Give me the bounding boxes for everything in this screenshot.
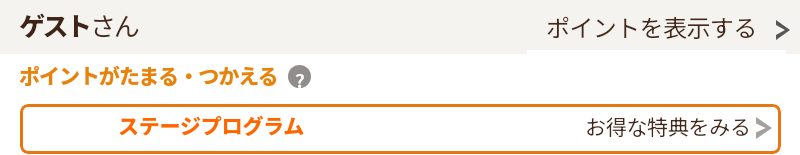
button[interactable]: ポイントがたまる・つかえる [19, 60, 278, 90]
staticText: お得な特典をみる [585, 111, 751, 141]
staticText: ポイントを表示する [546, 9, 757, 44]
button[interactable]: ゲスト [19, 6, 139, 44]
staticText: ? [295, 65, 305, 88]
staticText: さん [90, 6, 139, 44]
button[interactable]: ポイントを表示する [540, 0, 796, 54]
staticText: ステージプログラム [118, 110, 305, 140]
button[interactable]: ヘルプ [288, 65, 311, 88]
staticText: ゲスト [19, 6, 90, 44]
staticText: ポイントがたまる・つかえる [19, 60, 278, 90]
button[interactable]: ステージプログラム [20, 104, 781, 154]
